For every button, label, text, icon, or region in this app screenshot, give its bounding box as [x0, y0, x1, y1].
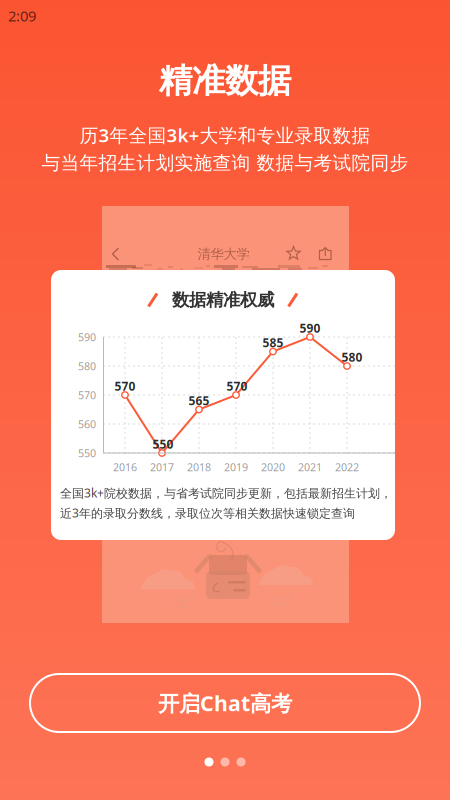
- staticText: 550: [78, 446, 96, 460]
- staticText: 565: [188, 392, 209, 408]
- staticText: 580: [78, 359, 96, 373]
- staticText: 全国3k+院校数据，与省考试院同步更新，包括最新招生计划，: [60, 485, 392, 501]
- staticText: 2017: [150, 460, 174, 474]
- staticText: 550: [152, 436, 173, 452]
- staticText: 560: [78, 417, 96, 431]
- staticText: 2:09: [8, 6, 36, 25]
- staticText: 2022: [335, 460, 359, 474]
- staticText: 570: [114, 378, 135, 394]
- staticText: 数据精准权威: [172, 289, 274, 311]
- staticText: 2020: [261, 460, 285, 474]
- staticText: 590: [78, 330, 96, 344]
- staticText: 精准数据: [159, 60, 291, 101]
- staticText: 590: [299, 320, 320, 336]
- button[interactable]: 开启Chat高考: [30, 674, 420, 732]
- staticText: 历3年全国3k+大学和专业录取数据: [79, 123, 370, 147]
- staticText: 2018: [187, 460, 211, 474]
- staticText: 585: [262, 334, 283, 350]
- staticText: 2016: [113, 460, 137, 474]
- staticText: 清华大学: [197, 246, 249, 262]
- staticText: 570: [78, 388, 96, 402]
- staticText: 2019: [224, 460, 248, 474]
- staticText: 近3年的录取分数线，录取位次等相关数据快速锁定查询: [60, 505, 355, 521]
- staticText: 570: [226, 378, 247, 394]
- staticText: 2021: [298, 460, 322, 474]
- staticText: 580: [341, 349, 362, 365]
- staticText: 开启Chat高考: [158, 689, 292, 717]
- staticText: 与当年招生计划实施查询 数据与考试院同步: [41, 151, 408, 174]
